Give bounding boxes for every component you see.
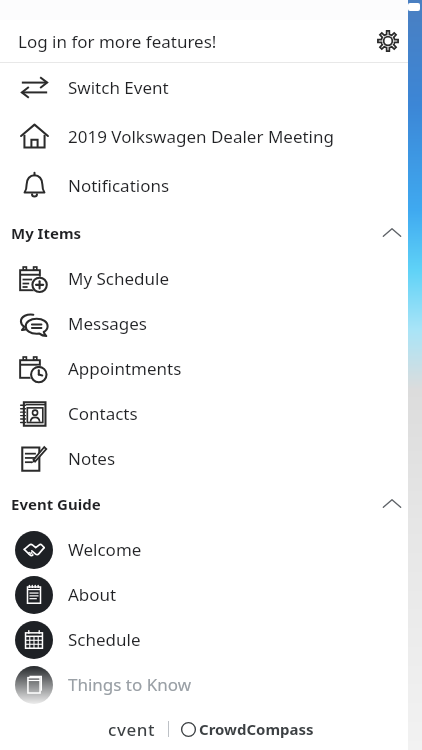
staticText: My Items xyxy=(11,223,82,243)
button[interactable]: 2019 Volkswagen Dealer Meeting xyxy=(0,112,422,161)
staticText: Messages xyxy=(68,312,148,335)
button[interactable]: Messages xyxy=(0,301,422,346)
staticText: Things to Know xyxy=(68,673,192,696)
button[interactable]: My Items xyxy=(0,210,422,256)
button[interactable]: Collapse Event Guide xyxy=(370,482,414,526)
button[interactable]: Settings xyxy=(362,20,414,62)
staticText: Notifications xyxy=(68,174,170,197)
button[interactable]: Notes xyxy=(0,436,422,481)
button[interactable]: Contacts xyxy=(0,391,422,436)
button[interactable]: Appointments xyxy=(0,346,422,391)
button[interactable]: Notifications xyxy=(0,161,422,210)
staticText: Event Guide xyxy=(11,494,101,514)
staticText: My Schedule xyxy=(68,267,170,290)
staticText: cvent xyxy=(108,718,156,741)
staticText: CrowdCompass xyxy=(199,719,314,739)
staticText: Contacts xyxy=(68,402,138,425)
button[interactable]: Switch Event xyxy=(0,63,422,112)
button[interactable]: Collapse My Items xyxy=(370,211,414,255)
button[interactable]: About xyxy=(0,572,422,617)
staticText: Welcome xyxy=(68,538,142,561)
staticText: 2019 Volkswagen Dealer Meeting xyxy=(68,125,334,148)
button[interactable]: Things to Know xyxy=(0,662,422,707)
button[interactable]: Schedule xyxy=(0,617,422,662)
staticText: Switch Event xyxy=(68,76,169,99)
staticText: Appointments xyxy=(68,357,182,380)
button[interactable]: Welcome xyxy=(0,527,422,572)
staticText: Schedule xyxy=(68,628,141,651)
staticText: Log in for more features! xyxy=(18,30,217,53)
staticText: About xyxy=(68,583,117,606)
button[interactable]: Event Guide xyxy=(0,481,422,527)
button[interactable]: My Schedule xyxy=(0,256,422,301)
button[interactable]: Log in for more features! xyxy=(0,20,362,62)
staticText: Notes xyxy=(68,447,116,470)
